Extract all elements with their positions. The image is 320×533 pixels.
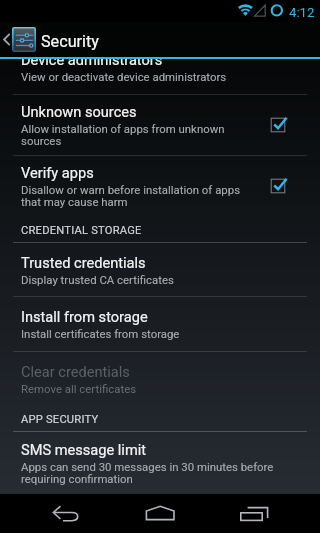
staticText: 4:12 (289, 5, 315, 20)
staticText: Verify apps (21, 164, 94, 181)
staticText: Install certificates from storage (21, 327, 180, 340)
staticText: APP SECURITY (21, 413, 99, 426)
button[interactable]: Trusted credentials (0, 243, 320, 296)
button[interactable]: Verify apps (0, 156, 320, 216)
staticText: CREDENTIAL STORAGE (21, 224, 142, 237)
button[interactable]: Home (106, 494, 213, 533)
staticText: Allow installation of apps from unknown … (21, 122, 225, 148)
staticText: Device administrators (21, 59, 163, 68)
staticText: SMS message limit (21, 441, 147, 458)
button[interactable]: Install from storage (0, 297, 320, 351)
button[interactable]: Clear credentials (0, 352, 320, 405)
staticText: Unknown sources (21, 103, 137, 120)
staticText: View or deactivate device administrators (21, 70, 227, 83)
button[interactable]: Recent apps (213, 494, 320, 533)
staticText: Clear credentials (21, 363, 130, 380)
button[interactable]: Back (0, 494, 106, 533)
staticText: Display trusted CA certificates (21, 273, 174, 286)
staticText: Disallow or warn before installation of … (21, 183, 241, 209)
button[interactable]: Device administrators (0, 59, 320, 94)
staticText: Install from storage (21, 308, 148, 325)
button[interactable]: Unknown sources (0, 95, 320, 155)
button[interactable]: SMS message limit (0, 432, 320, 494)
staticText: Remove all certificates (21, 382, 137, 395)
staticText: Apps can send 30 messages in 30 minutes … (21, 460, 274, 486)
staticText: Security (41, 32, 99, 51)
staticText: Trusted credentials (21, 254, 146, 271)
button[interactable]: Navigate up (3, 27, 36, 52)
